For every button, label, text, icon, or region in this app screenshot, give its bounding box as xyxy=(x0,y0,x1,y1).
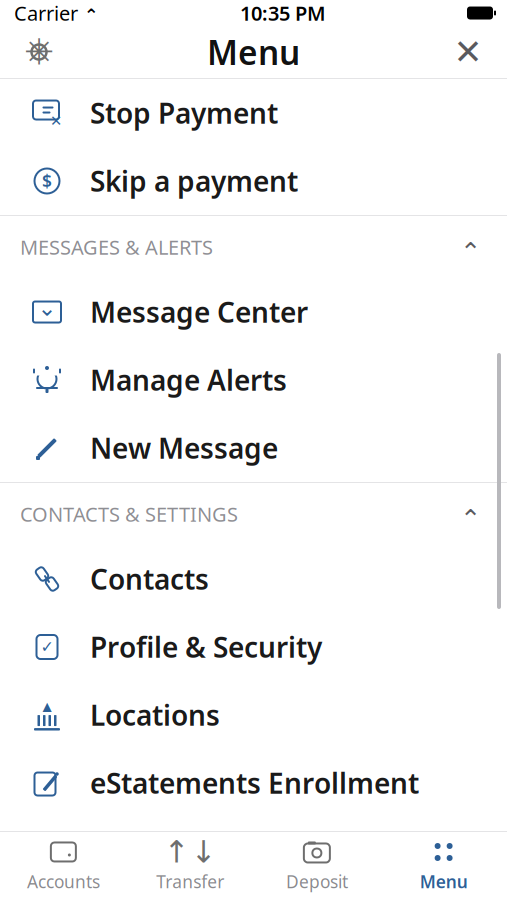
button[interactable]: $ xyxy=(0,147,507,215)
button[interactable]: ✓ xyxy=(0,613,507,681)
button[interactable]: Deposit xyxy=(253,835,380,897)
staticText: Skip a payment xyxy=(90,162,298,200)
staticText: Profile & Security xyxy=(90,628,322,666)
staticText: Carrier xyxy=(14,0,78,26)
staticText: ⌄ xyxy=(37,295,56,321)
staticText: ↓ xyxy=(191,835,217,869)
button[interactable]: MESSAGES & ALERTS xyxy=(0,216,507,278)
button[interactable]: Close xyxy=(445,29,491,75)
staticText: $ xyxy=(42,169,52,192)
button[interactable]: ⌄ xyxy=(0,278,507,346)
staticText: Manage Alerts xyxy=(90,361,287,399)
staticText: 10:35 PM xyxy=(240,0,326,26)
button[interactable]: CONTACTS & SETTINGS xyxy=(0,483,507,545)
button[interactable]: Settings xyxy=(16,29,62,75)
button[interactable]: Accounts xyxy=(0,835,127,897)
staticText: ▲ xyxy=(42,699,51,713)
staticText: ✕ xyxy=(50,113,62,129)
staticText: Locations xyxy=(90,696,220,734)
staticText: Menu xyxy=(207,30,300,74)
button[interactable]: Menu xyxy=(380,835,507,897)
button[interactable]: New Message xyxy=(0,414,507,482)
staticText: eStatements Enrollment xyxy=(90,764,419,802)
staticText: Contacts xyxy=(90,560,209,598)
staticText: ⌃ xyxy=(460,238,481,266)
staticText: Stop Payment xyxy=(90,94,278,132)
staticText: ⌃ xyxy=(84,5,99,25)
staticText: ⌃ xyxy=(460,505,481,533)
staticText: MESSAGES & ALERTS xyxy=(20,234,213,260)
staticText: Menu xyxy=(420,870,468,893)
staticText: ✓ xyxy=(40,638,53,656)
staticText: ↑ xyxy=(164,835,190,869)
staticText: Deposit xyxy=(286,870,348,893)
staticText: Transfer xyxy=(156,870,224,893)
staticText: New Message xyxy=(90,429,278,467)
staticText: Message Center xyxy=(90,293,308,331)
button[interactable]: ▲ xyxy=(0,681,507,749)
button[interactable]: ✕ xyxy=(0,79,507,147)
button[interactable]: Contacts xyxy=(0,545,507,613)
staticText: CONTACTS & SETTINGS xyxy=(20,501,238,527)
button[interactable]: ↑ xyxy=(127,835,254,897)
staticText: ✕ xyxy=(453,32,482,72)
staticText: Accounts xyxy=(27,870,100,893)
staticText: ✳ xyxy=(24,32,54,72)
button[interactable]: Manage Alerts xyxy=(0,346,507,414)
button[interactable]: eStatements Enrollment xyxy=(0,749,507,817)
